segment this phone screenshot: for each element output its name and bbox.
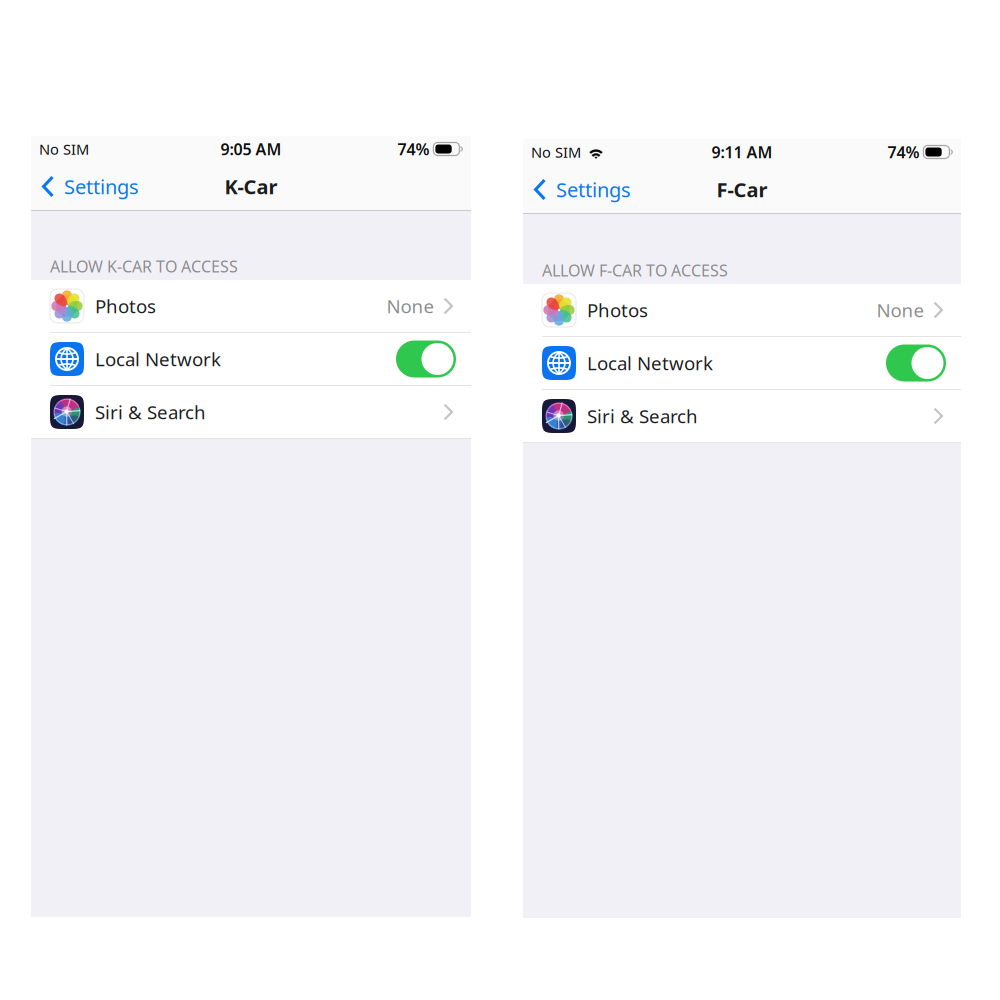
button[interactable]: Siri & Search	[523, 390, 961, 442]
staticText: Photos	[95, 294, 156, 318]
staticText: None	[876, 298, 924, 322]
staticText: 74%	[397, 138, 429, 160]
staticText: 9:05 AM	[220, 138, 281, 160]
button[interactable]: Photos	[31, 280, 471, 332]
staticText: No SIM	[531, 142, 581, 162]
staticText: Siri & Search	[95, 400, 206, 424]
staticText: No SIM	[39, 139, 89, 159]
button[interactable]: Local Network	[523, 337, 961, 389]
button[interactable]: Siri & Search	[31, 386, 471, 438]
button[interactable]: Local Network, on	[396, 340, 456, 377]
button[interactable]: Back to Settings	[523, 171, 631, 208]
staticText: None	[386, 294, 434, 318]
staticText: Settings	[64, 173, 139, 200]
staticText: ALLOW F-CAR TO ACCESS	[542, 260, 728, 281]
staticText: 74%	[887, 141, 919, 163]
staticText: Local Network	[587, 351, 713, 375]
button[interactable]: Back to Settings	[31, 168, 139, 205]
staticText: Photos	[587, 298, 648, 322]
button[interactable]: Local Network, on	[886, 344, 946, 381]
staticText: ALLOW K-CAR TO ACCESS	[50, 256, 238, 277]
button[interactable]: Local Network	[31, 333, 471, 385]
staticText: F-Car	[716, 176, 767, 203]
staticText: 9:11 AM	[711, 141, 772, 163]
button[interactable]: Photos	[523, 284, 961, 336]
staticText: Local Network	[95, 347, 221, 371]
staticText: Siri & Search	[587, 404, 698, 428]
staticText: Settings	[556, 176, 631, 203]
staticText: K-Car	[224, 173, 277, 200]
